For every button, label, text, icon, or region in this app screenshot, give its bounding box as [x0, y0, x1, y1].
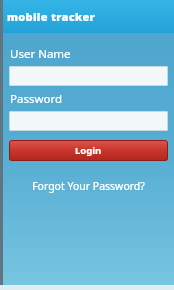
- staticText: mobile tracker: [7, 9, 96, 24]
- button[interactable]: Forgot Your Password?: [3, 179, 174, 193]
- button[interactable]: Login: [9, 140, 168, 161]
- staticText: Password: [10, 91, 63, 107]
- staticText: Login: [75, 144, 102, 157]
- staticText: Forgot Your Password?: [32, 179, 145, 193]
- button[interactable]: User Name: [9, 66, 168, 86]
- staticText: User Name: [10, 46, 71, 62]
- button[interactable]: Password: [9, 111, 168, 131]
